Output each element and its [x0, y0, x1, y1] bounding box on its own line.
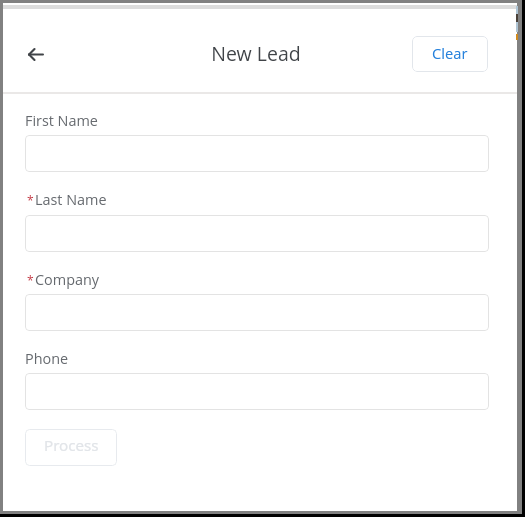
button[interactable] — [25, 215, 489, 252]
button[interactable] — [25, 294, 489, 331]
button[interactable] — [25, 373, 489, 410]
staticText: Clear — [432, 43, 468, 63]
button[interactable]: Process — [25, 429, 117, 466]
button[interactable]: Back — [12, 30, 60, 78]
staticText: * — [27, 192, 34, 208]
staticText: Last Name — [35, 190, 107, 210]
staticText: Company — [35, 270, 100, 290]
staticText: Process — [44, 435, 99, 456]
staticText: New Lead — [153, 40, 359, 67]
button[interactable]: Clear — [412, 36, 488, 72]
button[interactable] — [25, 135, 489, 172]
staticText: First Name — [25, 111, 98, 131]
staticText: Phone — [25, 349, 69, 369]
staticText: * — [27, 272, 34, 288]
